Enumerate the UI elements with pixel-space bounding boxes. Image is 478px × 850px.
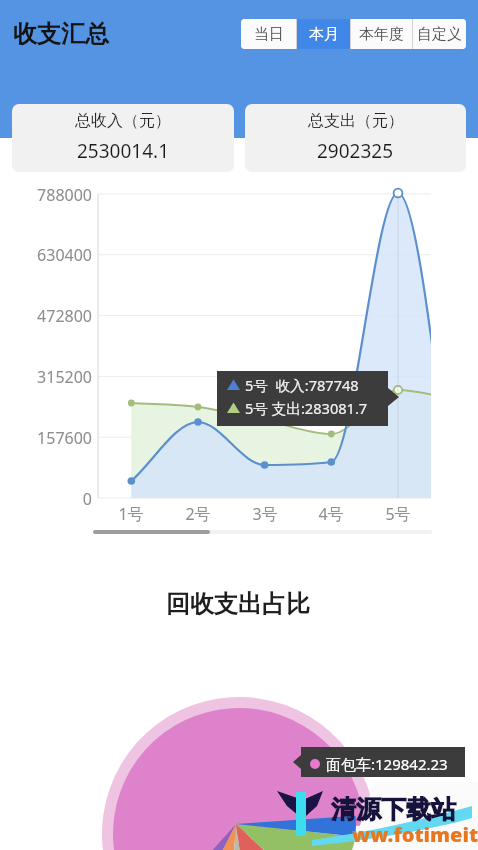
staticText: 472800	[0, 305, 92, 327]
staticText: 总收入（元）	[75, 111, 171, 131]
staticText: 自定义	[417, 25, 462, 44]
button[interactable]: 总收入（元）	[12, 104, 234, 172]
staticText: 5号 收入:787748	[245, 375, 359, 395]
staticText: 5号 支出:283081.7	[245, 398, 368, 418]
staticText: 1号	[101, 503, 161, 525]
button[interactable]: 总支出（元）	[245, 104, 466, 172]
button[interactable]: 当日	[241, 19, 296, 49]
staticText: 788000	[0, 184, 92, 206]
button[interactable]: 本月	[297, 19, 350, 49]
staticText: 本年度	[359, 25, 404, 44]
staticText: 本月	[309, 25, 339, 44]
staticText: 总支出（元）	[308, 111, 404, 131]
staticText: 3号	[235, 503, 295, 525]
staticText: 315200	[0, 366, 92, 388]
staticText: 面包车:129842.23	[326, 754, 448, 774]
staticText: 2号	[168, 503, 228, 525]
button[interactable]: 本年度	[351, 19, 412, 49]
button[interactable]: 自定义	[413, 19, 466, 49]
staticText: 收支汇总	[13, 19, 109, 49]
staticText: 4号	[301, 503, 361, 525]
button[interactable]: Chart range slider	[93, 530, 432, 534]
staticText: 当日	[254, 25, 284, 44]
staticText: 清源下载站	[331, 794, 456, 825]
staticText: 回收支出占比	[0, 589, 477, 619]
staticText: 2530014.1	[77, 138, 170, 164]
staticText: 630400	[0, 244, 92, 266]
staticText: 0	[0, 488, 92, 510]
staticText: ww.fotimeit.com	[352, 821, 478, 848]
staticText: 5号	[368, 503, 428, 525]
staticText: 157600	[0, 427, 92, 449]
staticText: 2902325	[317, 138, 394, 164]
